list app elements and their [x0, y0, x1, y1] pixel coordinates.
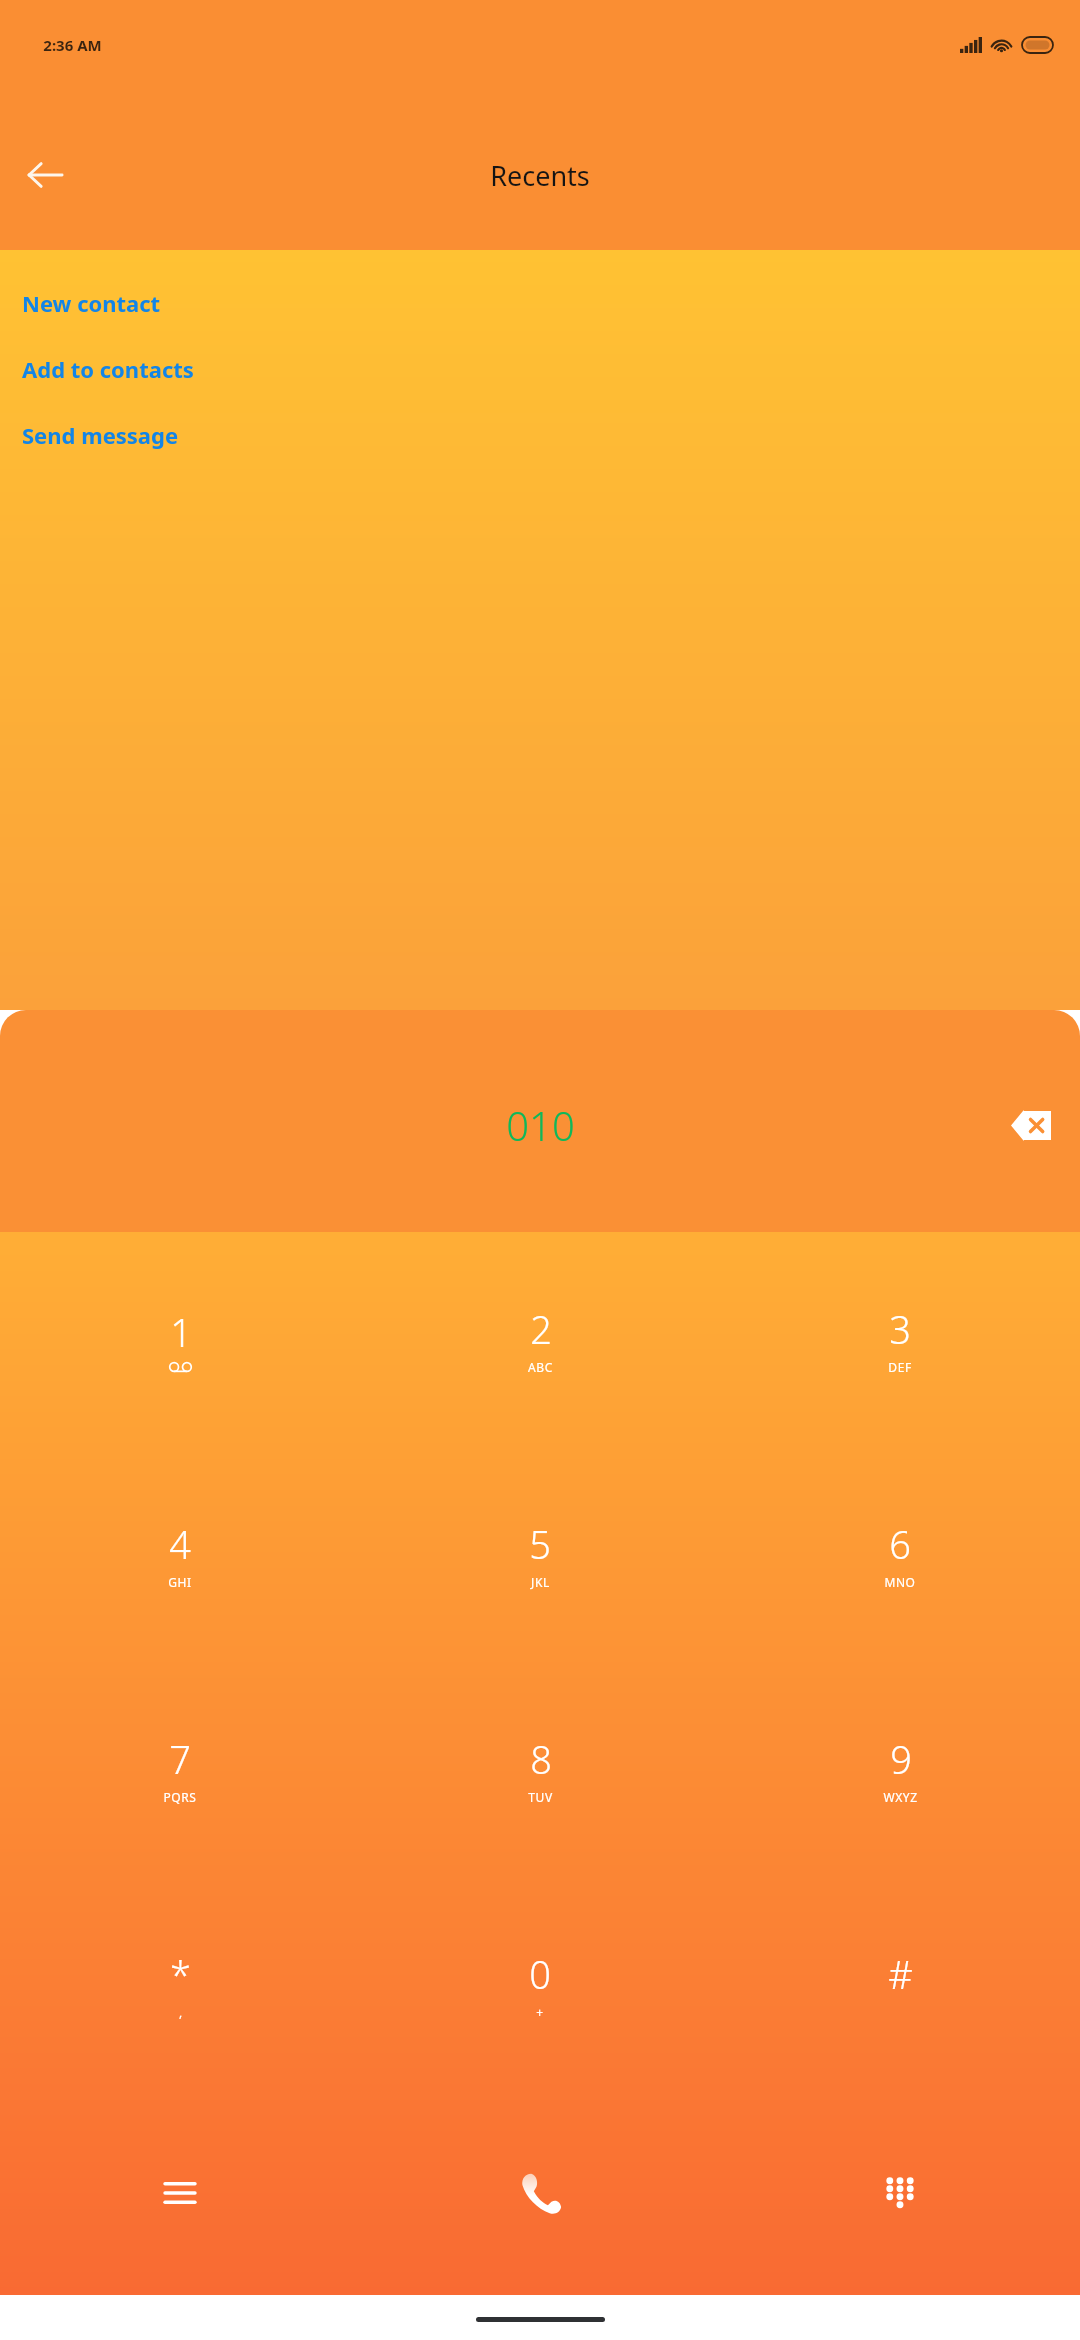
button[interactable]: New contact [0, 270, 1080, 336]
button[interactable]: Add to contacts [0, 336, 1080, 402]
staticText: # [888, 1948, 913, 2000]
staticText: 7 [169, 1733, 191, 1785]
button[interactable]: Back [18, 148, 72, 202]
staticText: 0 [529, 1948, 551, 2000]
staticText: 3 [889, 1303, 911, 1355]
staticText: ABC [528, 1359, 553, 1375]
staticText: Send message [22, 420, 179, 450]
staticText: 5 [529, 1518, 551, 1570]
staticText: MNO [884, 1574, 916, 1590]
staticText: JKL [531, 1574, 550, 1590]
button[interactable]: 5 [360, 1446, 720, 1661]
button[interactable]: Backspace [1002, 1096, 1060, 1154]
staticText: New contact [22, 288, 161, 318]
button[interactable]: 2 [360, 1232, 720, 1446]
button[interactable]: 6 [720, 1446, 1080, 1661]
staticText: 1 [170, 1306, 192, 1358]
staticText: PQRS [163, 1789, 197, 1805]
staticText: TUV [528, 1789, 553, 1805]
button[interactable]: 3 [720, 1232, 1080, 1446]
button[interactable]: 8 [360, 1661, 720, 1876]
staticText: 010 [506, 1098, 575, 1152]
staticText: * [170, 1948, 191, 2000]
staticText: Add to contacts [22, 354, 194, 384]
button[interactable]: Call [360, 2091, 720, 2295]
button[interactable]: 4 [0, 1446, 360, 1661]
staticText: WXYZ [883, 1789, 918, 1805]
staticText: 8 [530, 1733, 552, 1785]
staticText: 9 [890, 1733, 912, 1785]
staticText: DEF [888, 1359, 912, 1375]
button[interactable]: 7 [0, 1661, 360, 1876]
staticText: GHI [168, 1574, 192, 1590]
button[interactable]: # [720, 1876, 1080, 2091]
button[interactable]: * [0, 1876, 360, 2091]
staticText: 2:36 AM [43, 35, 102, 55]
staticText: 4 [169, 1518, 191, 1570]
button[interactable]: Menu [0, 2091, 360, 2295]
staticText: 2 [530, 1303, 552, 1355]
button[interactable]: Keypad [720, 2091, 1080, 2295]
staticText: + [536, 2004, 544, 2020]
button[interactable]: Send message [0, 402, 1080, 468]
staticText: 6 [889, 1518, 911, 1570]
button[interactable]: 9 [720, 1661, 1080, 1876]
staticText: , [179, 2004, 183, 2020]
button[interactable]: 0 [360, 1876, 720, 2091]
staticText: Recents [490, 157, 590, 194]
button[interactable]: 1 [0, 1232, 360, 1446]
